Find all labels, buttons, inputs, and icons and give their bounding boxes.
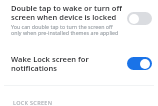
staticText: Wake Lock screen for notifications — [11, 54, 123, 73]
button[interactable]: Wake Lock screen for notifications — [0, 52, 158, 75]
button[interactable]: Wake Lock screen for notifications toggl… — [127, 57, 152, 70]
button[interactable]: Double tap to wake or turn off screen wh… — [0, 0, 158, 40]
staticText: LOCK SCREEN — [13, 99, 53, 106]
staticText: You can double tap to turn the screen of… — [11, 23, 119, 37]
button[interactable]: Double tap to wake toggle, off — [127, 12, 152, 25]
staticText: Double tap to wake or turn off screen wh… — [11, 3, 122, 21]
